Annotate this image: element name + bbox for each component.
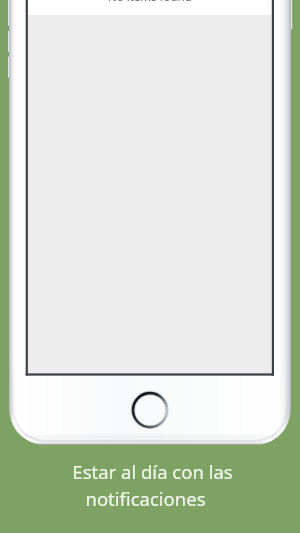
staticText: notificaciones [85,486,206,511]
staticText: Estar al día con las [72,459,233,484]
staticText: No items found [108,0,192,5]
